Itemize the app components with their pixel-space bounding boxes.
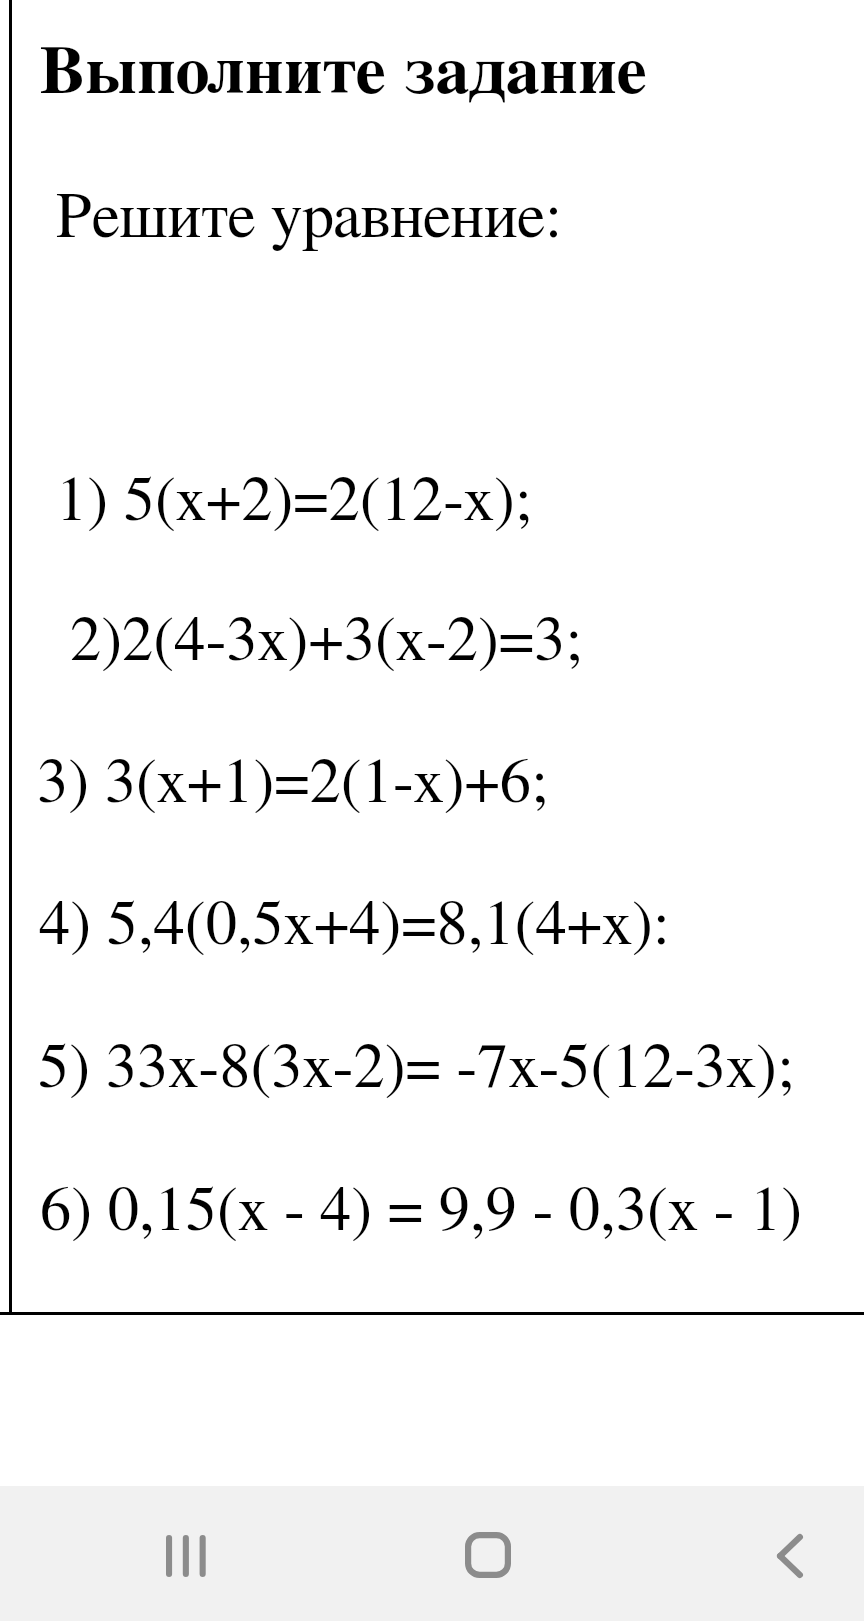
staticText: 4) 5,4(0,5x+4)=8,1(4+x):	[39, 894, 669, 957]
button[interactable]: Recent apps	[126, 1488, 246, 1621]
staticText: 2)2(4-3x)+3(x-2)=3;	[70, 610, 581, 673]
staticText: 3) 3(x+1)=2(1-x)+6;	[37, 752, 547, 815]
button[interactable]: Home	[428, 1487, 548, 1621]
staticText: 5) 33x-8(3x-2)= -7x-5(12-3x);	[38, 1037, 793, 1100]
staticText: Решите уравнение:	[56, 186, 561, 250]
staticText: 6) 0,15(x - 4) = 9,9 - 0,3(x - 1)	[40, 1180, 802, 1243]
button[interactable]: Back	[730, 1488, 850, 1621]
staticText: Выполните задание	[39, 39, 648, 107]
staticText: 1) 5(x+2)=2(12-x);	[56, 470, 531, 533]
